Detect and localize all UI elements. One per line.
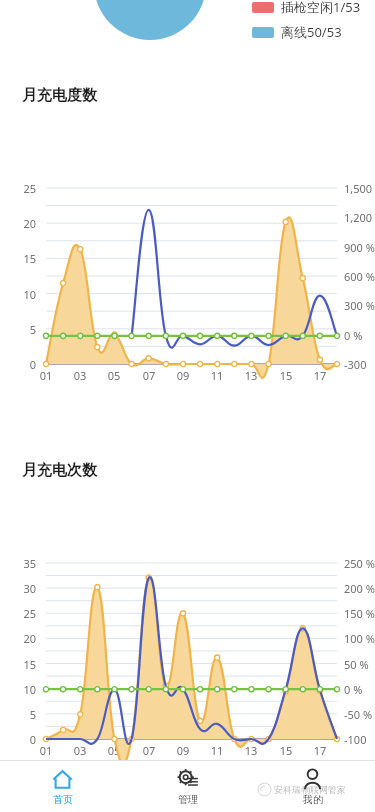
staticText: 07 <box>139 368 159 383</box>
staticText: 1,200 <box>344 210 373 225</box>
staticText: 250 % <box>344 556 375 571</box>
staticText: 30 <box>10 581 36 596</box>
staticText: 月充电次数 <box>22 461 97 480</box>
staticText: 0 <box>10 732 36 747</box>
staticText: 13 <box>241 368 261 383</box>
staticText: 100 % <box>344 631 375 646</box>
staticText: -100 <box>344 732 367 747</box>
staticText: 50 % <box>344 657 369 672</box>
staticText: 35 <box>10 556 36 571</box>
staticText: -50 % <box>344 707 373 722</box>
button[interactable]: 管理 <box>125 761 250 812</box>
staticText: 离线50/53 <box>281 23 342 41</box>
staticText: 17 <box>310 368 330 383</box>
staticText: 10 <box>10 682 36 697</box>
staticText: 5 <box>10 707 36 722</box>
staticText: 03 <box>70 368 90 383</box>
staticText: 管理 <box>178 793 198 806</box>
staticText: 安科瑞物联网管家 <box>274 784 346 795</box>
staticText: 11 <box>207 368 227 383</box>
staticText: 05 <box>104 368 124 383</box>
staticText: 10 <box>10 287 36 302</box>
staticText: 15 <box>10 657 36 672</box>
staticText: 首页 <box>53 793 73 806</box>
staticText: 900 % <box>344 240 375 255</box>
staticText: 17 <box>310 743 330 758</box>
staticText: 5 <box>10 322 36 337</box>
staticText: 600 % <box>344 269 375 284</box>
staticText: 03 <box>70 743 90 758</box>
staticText: 09 <box>173 368 193 383</box>
staticText: 0 <box>10 357 36 372</box>
staticText: 0 % <box>344 328 363 343</box>
staticText: 150 % <box>344 606 375 621</box>
staticText: 07 <box>139 743 159 758</box>
staticText: 插枪空闲1/53 <box>281 0 361 16</box>
staticText: 25 <box>10 181 36 196</box>
staticText: 09 <box>173 743 193 758</box>
staticText: 01 <box>36 743 56 758</box>
button[interactable]: 首页 <box>0 761 125 812</box>
staticText: 25 <box>10 606 36 621</box>
button[interactable]: 我的 <box>250 761 375 812</box>
staticText: -300 <box>344 357 367 372</box>
staticText: 11 <box>207 743 227 758</box>
staticText: 300 % <box>344 298 375 313</box>
staticText: 月充电度数 <box>22 86 97 105</box>
staticText: 20 <box>10 216 36 231</box>
staticText: 05 <box>104 743 124 758</box>
staticText: 15 <box>10 251 36 266</box>
staticText: 20 <box>10 631 36 646</box>
staticText: 13 <box>241 743 261 758</box>
staticText: 15 <box>276 368 296 383</box>
staticText: 我的 <box>303 793 323 806</box>
staticText: 01 <box>36 368 56 383</box>
staticText: 15 <box>276 743 296 758</box>
staticText: 1,500 <box>344 181 373 196</box>
staticText: 0 % <box>344 682 363 697</box>
staticText: 200 % <box>344 581 375 596</box>
